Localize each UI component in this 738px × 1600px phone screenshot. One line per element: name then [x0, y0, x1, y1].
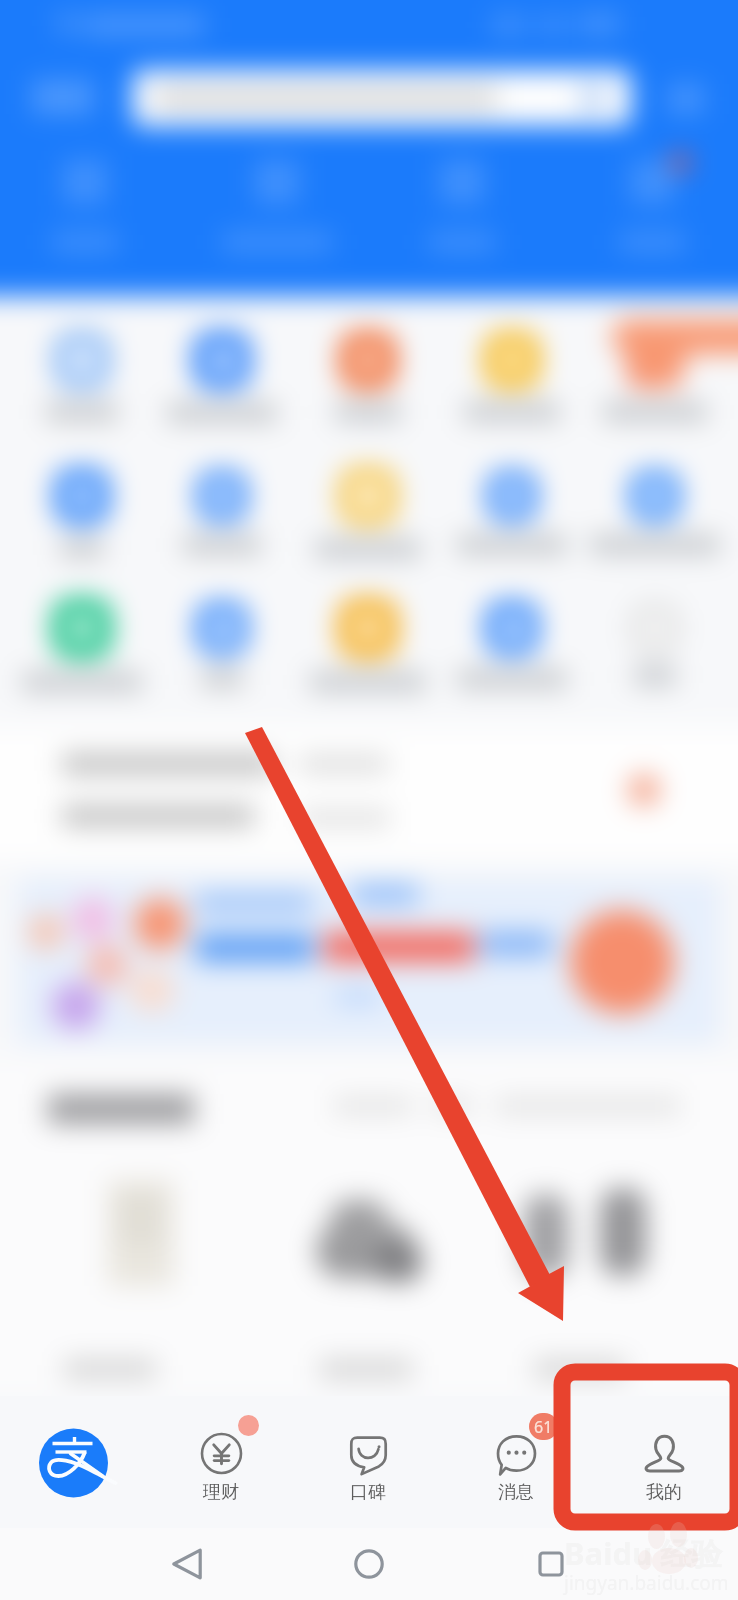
staticText: 理财 [203, 1481, 239, 1504]
staticText: 消息 [498, 1481, 534, 1504]
button[interactable]: 支付宝首页 [0, 1396, 147, 1528]
button[interactable]: Home [342, 1537, 396, 1591]
button[interactable]: Recent apps [524, 1537, 578, 1591]
button[interactable]: 61 [442, 1396, 590, 1528]
staticText: 我的 [646, 1481, 682, 1504]
button[interactable]: 理财 [147, 1396, 294, 1528]
button[interactable]: 我的 [590, 1396, 738, 1528]
staticText: 口碑 [350, 1481, 386, 1504]
staticText: Baidu 经验 [564, 1532, 723, 1574]
button[interactable]: 口碑 [294, 1396, 442, 1528]
staticText: 61 [534, 1416, 553, 1438]
button[interactable]: Back [160, 1537, 214, 1591]
